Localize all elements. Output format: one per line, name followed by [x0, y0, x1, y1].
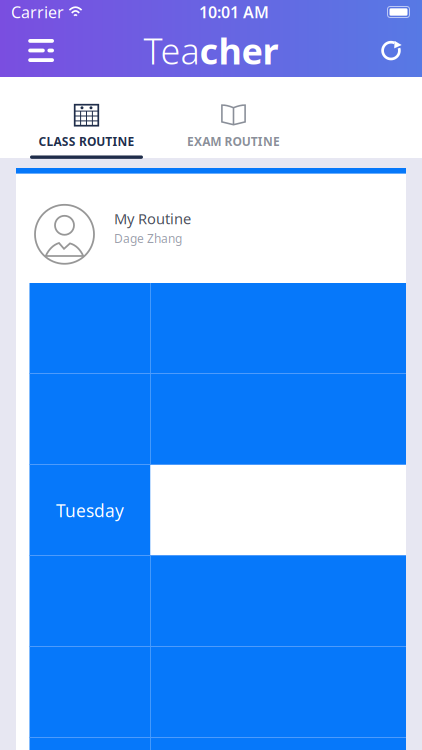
button[interactable]: EXAM ROUTINE	[160, 77, 307, 159]
staticText: EXAM ROUTINE	[187, 133, 280, 149]
button[interactable]: CLASS ROUTINE	[13, 77, 160, 159]
staticText: Tea	[143, 27, 199, 74]
button[interactable]: Menu	[0, 24, 54, 77]
button[interactable]: Refresh	[360, 24, 422, 77]
staticText: 10:01 AM	[199, 1, 269, 23]
staticText: cher	[199, 27, 278, 74]
staticText: Carrier	[11, 1, 64, 23]
staticText: Tuesday	[56, 499, 124, 522]
staticText: CLASS ROUTINE	[38, 133, 135, 149]
staticText: My Routine	[114, 209, 191, 228]
staticText: Dage Zhang	[114, 230, 182, 246]
